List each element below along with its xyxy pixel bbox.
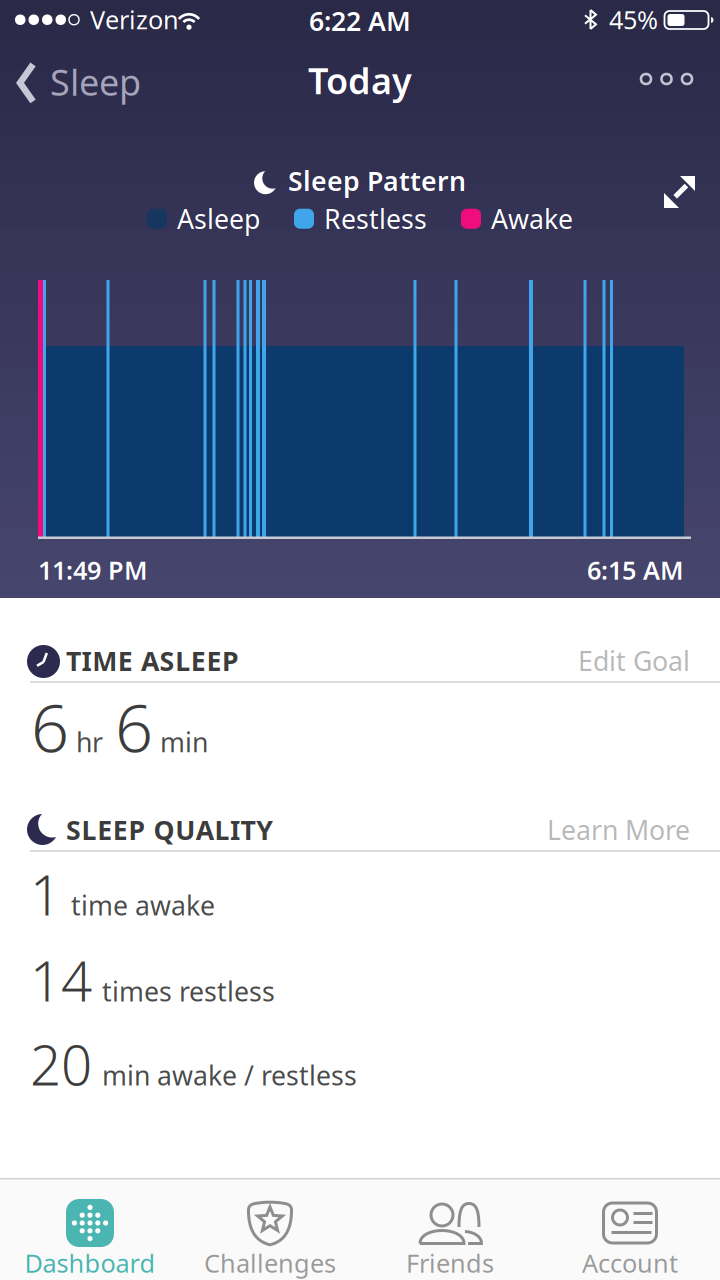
staticText: 6 [31,682,69,770]
staticText: 45% [609,3,658,36]
staticText: Sleep Pattern [288,163,466,198]
button[interactable]: Edit Goal [578,643,690,678]
staticText: 1 [30,858,61,931]
staticText: 14 [30,944,92,1017]
staticText: Friends [406,1246,494,1280]
button[interactable]: Dashboard [0,1198,180,1280]
staticText: 6:22 AM [309,3,411,38]
staticText: 20 [30,1028,92,1101]
staticText: Restless [324,201,427,236]
staticText: TIME ASLEEP [66,643,239,678]
staticText: Sleep [50,58,141,106]
staticText: hr [76,724,103,759]
staticText: times restless [102,973,275,1009]
staticText: Dashboard [24,1246,155,1280]
staticText: Challenges [204,1246,336,1280]
button[interactable]: Account [540,1198,720,1280]
staticText: Account [582,1246,678,1280]
staticText: Awake [491,201,573,236]
staticText: min awake / restless [102,1057,357,1093]
staticText: Asleep [177,201,260,236]
staticText: Edit Goal [578,643,690,678]
staticText: Learn More [547,812,690,847]
button[interactable]: Learn More [547,812,690,847]
staticText: 6 [115,682,153,770]
staticText: SLEEP QUALITY [66,812,273,847]
button[interactable] [664,176,696,208]
staticText: 11:49 PM [38,553,148,587]
button[interactable] [641,74,692,84]
staticText: Verizon [90,3,179,36]
button[interactable]: Sleep [18,59,141,107]
staticText: Today [308,56,412,104]
staticText: min [160,724,208,759]
button[interactable]: Challenges [180,1198,360,1280]
button[interactable]: Friends [360,1198,540,1280]
staticText: 6:15 AM [587,553,684,587]
staticText: time awake [71,887,215,923]
